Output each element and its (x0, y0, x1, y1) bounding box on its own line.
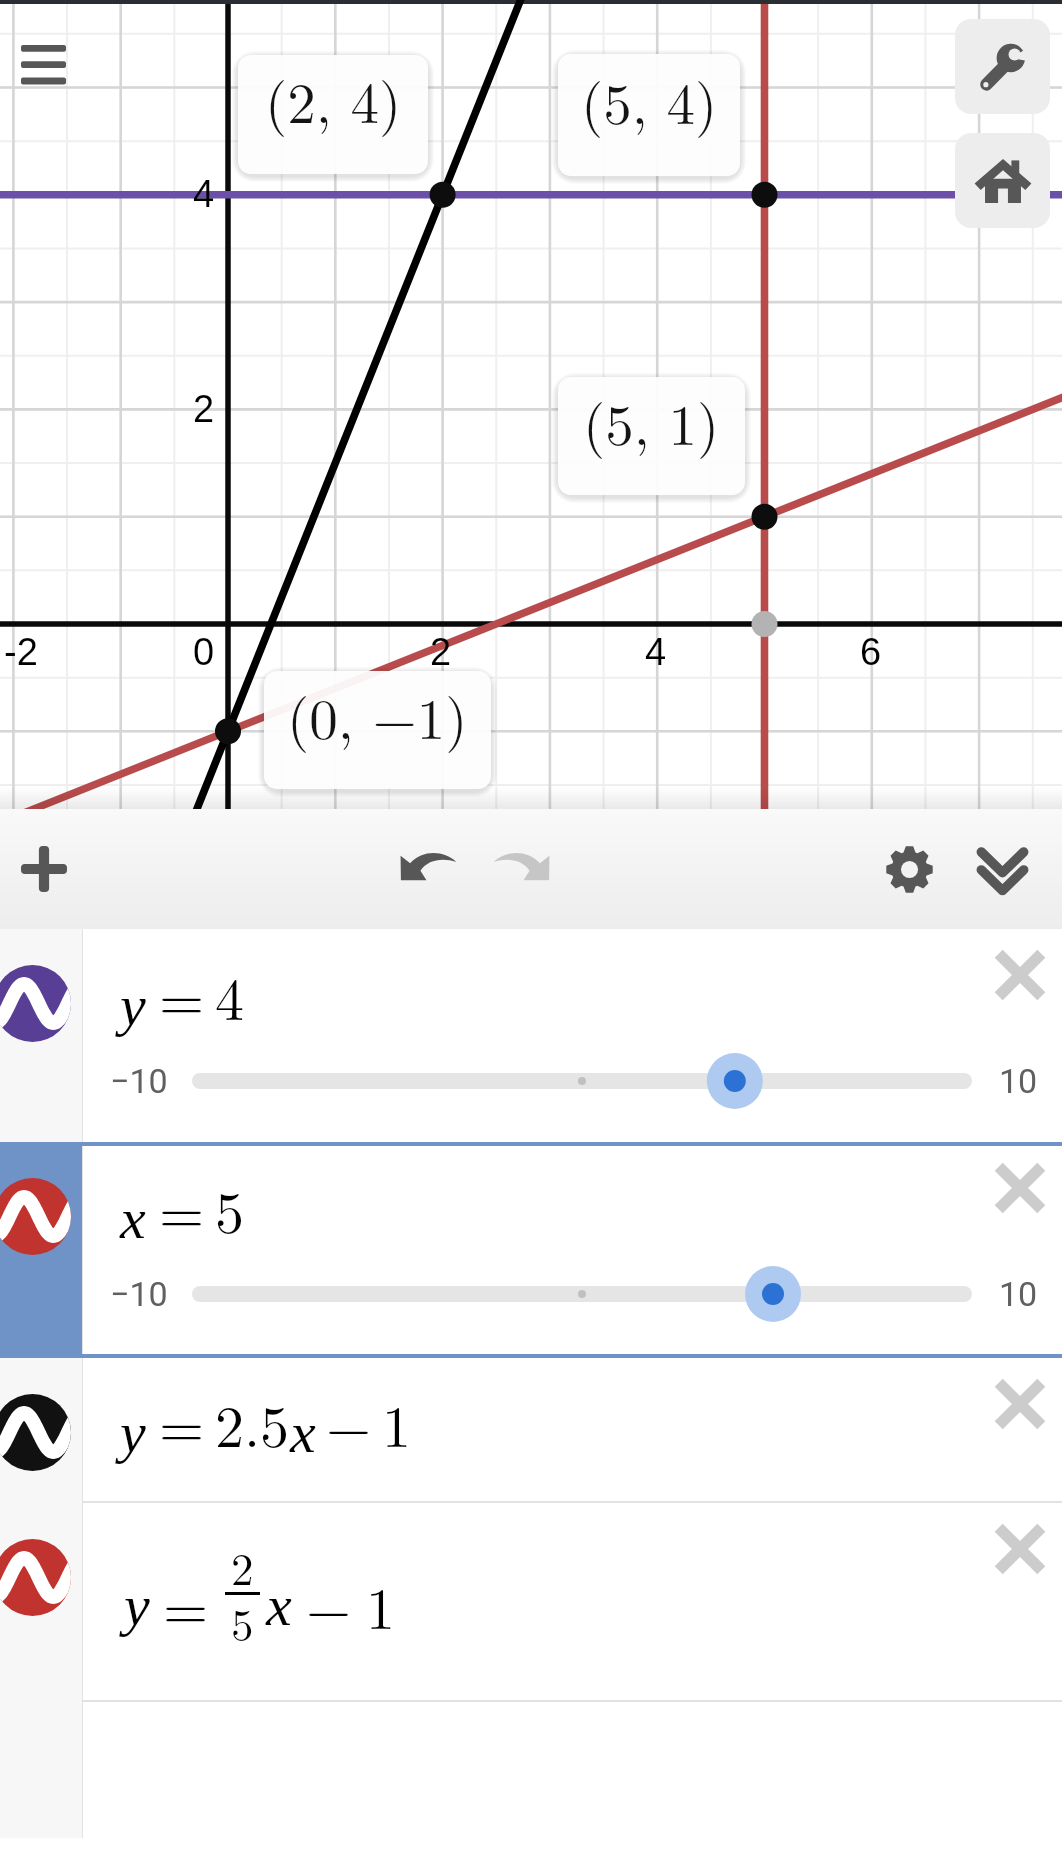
staticText: = (159, 1382, 205, 1464)
staticText: 10 (999, 1274, 1038, 1314)
staticText: = (159, 1168, 205, 1250)
staticText: y (120, 973, 146, 1037)
staticText: x (290, 1400, 316, 1464)
button[interactable]: Redo (480, 827, 564, 911)
button[interactable]: Menu (0, 23, 86, 105)
button[interactable]: Delete (977, 1145, 1062, 1231)
staticText: 2 (193, 388, 215, 430)
staticText: = (159, 955, 205, 1037)
button[interactable]: x (0, 1142, 1062, 1358)
staticText: (5, 1) (583, 381, 720, 462)
staticText: − (326, 1382, 372, 1464)
staticText: 5 (215, 1168, 245, 1250)
staticText: x (120, 1186, 146, 1250)
button[interactable]: Delete (977, 1506, 1062, 1592)
staticText: 4 (645, 631, 667, 673)
button[interactable]: Add expression (2, 827, 86, 911)
button[interactable]: Settings (867, 827, 951, 911)
staticText: -2 (4, 631, 38, 673)
staticText: 6 (860, 631, 882, 673)
staticText: y (120, 1400, 146, 1464)
staticText: − (306, 1564, 352, 1646)
staticText: (5, 4) (581, 60, 718, 141)
staticText: (2, 4) (265, 59, 402, 140)
button[interactable]: Delete (977, 1361, 1062, 1447)
staticText: 2.5 (215, 1382, 290, 1464)
staticText: 0 (193, 631, 215, 673)
staticText: 2 (430, 631, 452, 673)
staticText: 1 (382, 1382, 412, 1464)
staticText: x (266, 1573, 292, 1637)
staticText: y (124, 1573, 150, 1637)
button[interactable]: Delete (977, 932, 1062, 1018)
staticText: 2 (231, 1534, 254, 1598)
staticText: 4 (193, 173, 215, 215)
staticText: = (163, 1564, 209, 1646)
staticText: −10 (110, 1274, 168, 1314)
button[interactable]: Undo (386, 827, 470, 911)
staticText: 10 (999, 1061, 1038, 1101)
button[interactable]: Reset view (955, 133, 1050, 228)
staticText: −10 (110, 1061, 168, 1101)
staticText: 4 (215, 955, 245, 1037)
button[interactable]: y (0, 929, 1062, 1142)
staticText: 5 (231, 1590, 254, 1654)
staticText: (0, −1) (287, 675, 468, 756)
button[interactable]: y (0, 1503, 1062, 1702)
button[interactable]: Collapse panel (960, 827, 1044, 911)
button[interactable]: Tools (955, 19, 1050, 114)
button[interactable]: y (0, 1358, 1062, 1503)
staticText: 1 (366, 1564, 396, 1646)
